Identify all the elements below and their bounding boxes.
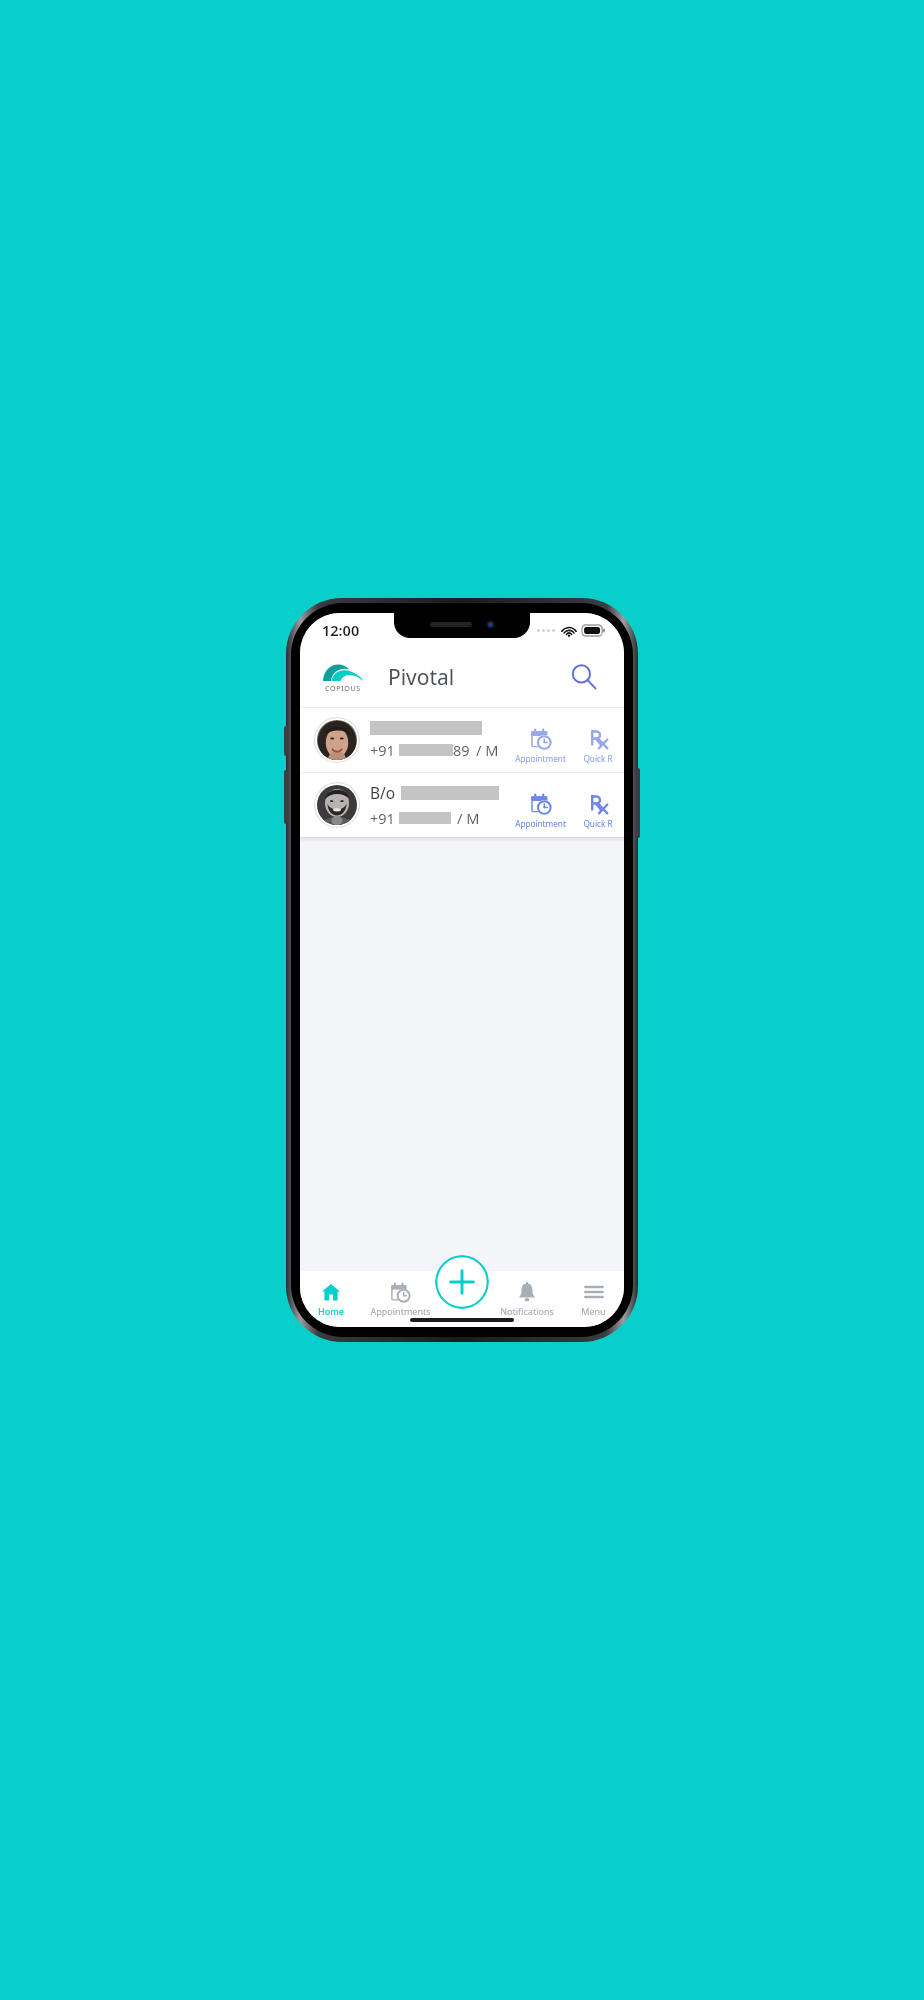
- staticText: Menu: [581, 1305, 606, 1317]
- staticText: +91: [370, 808, 395, 828]
- button[interactable]: Appointment: [514, 708, 566, 772]
- staticText: +91: [370, 740, 395, 760]
- button[interactable]: B/o: [300, 773, 624, 837]
- staticText: Quick R: [583, 818, 613, 829]
- staticText: Appointments: [370, 1305, 431, 1317]
- button[interactable]: Add: [435, 1255, 489, 1309]
- button[interactable]: Search: [564, 657, 604, 697]
- button[interactable]: +91: [300, 708, 624, 772]
- staticText: Quick R: [583, 753, 613, 764]
- staticText: Appointment: [515, 753, 566, 764]
- staticText: / M: [457, 808, 480, 828]
- button[interactable]: Notifications: [490, 1271, 563, 1327]
- staticText: / M: [476, 740, 499, 760]
- button[interactable]: Menu: [563, 1271, 624, 1327]
- staticText: COPIOUS: [325, 683, 361, 693]
- staticText: B/o: [370, 782, 396, 803]
- button[interactable]: Appointment: [514, 773, 566, 837]
- staticText: Pivotal: [388, 663, 455, 692]
- button[interactable]: Home: [300, 1271, 362, 1327]
- staticText: 89: [453, 740, 470, 760]
- staticText: Appointment: [515, 818, 566, 829]
- button[interactable]: Appointments: [362, 1271, 438, 1327]
- button[interactable]: Quick R: [572, 708, 624, 772]
- staticText: Notifications: [500, 1305, 554, 1317]
- staticText: Home: [318, 1305, 344, 1317]
- staticText: 12:00: [322, 620, 360, 640]
- button[interactable]: Quick R: [572, 773, 624, 837]
